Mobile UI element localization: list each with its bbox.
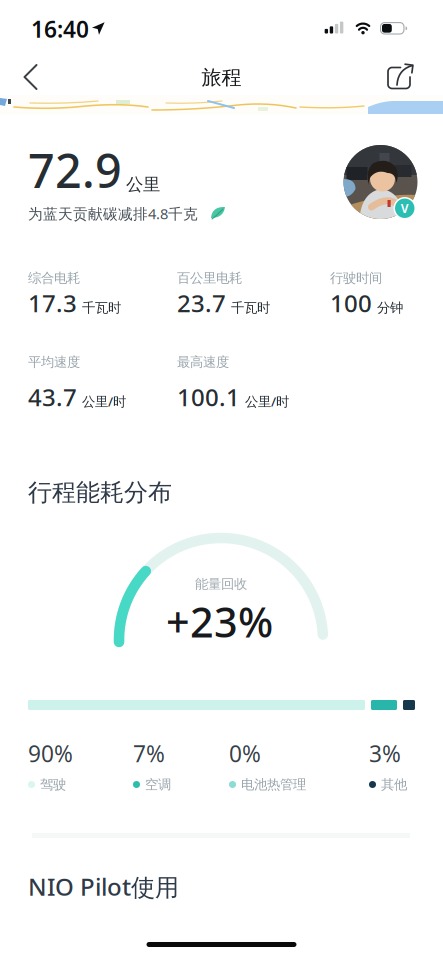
staticText: 百公里电耗 bbox=[177, 270, 242, 286]
staticText: 16:40 bbox=[31, 14, 89, 44]
staticText: 其他 bbox=[381, 776, 407, 793]
staticText: 0% bbox=[229, 738, 261, 768]
staticText: 千瓦时 bbox=[231, 300, 270, 316]
staticText: 驾驶 bbox=[40, 776, 66, 793]
staticText: 行程能耗分布 bbox=[28, 478, 172, 507]
staticText: 23.7 bbox=[177, 287, 226, 319]
staticText: 旅程 bbox=[201, 65, 241, 90]
staticText: V bbox=[401, 200, 409, 216]
staticText: 公里 bbox=[126, 174, 160, 195]
staticText: 平均速度 bbox=[28, 354, 80, 370]
staticText: 72.9 bbox=[28, 139, 122, 201]
staticText: 3% bbox=[369, 738, 401, 768]
staticText: 空调 bbox=[145, 776, 171, 793]
staticText: 能量回收 bbox=[195, 576, 247, 592]
staticText: 千瓦时 bbox=[82, 300, 121, 316]
button[interactable]: Back bbox=[8, 54, 52, 100]
staticText: 17.3 bbox=[28, 287, 77, 319]
staticText: 90% bbox=[28, 738, 73, 768]
staticText: 100.1 bbox=[177, 381, 240, 413]
staticText: +23% bbox=[166, 594, 273, 649]
staticText: 100 bbox=[330, 287, 372, 319]
staticText: 行驶时间 bbox=[330, 270, 382, 286]
staticText: 7% bbox=[133, 738, 165, 768]
staticText: 公里/时 bbox=[82, 392, 126, 410]
button[interactable]: Share bbox=[375, 53, 425, 99]
staticText: 电池热管理 bbox=[241, 776, 306, 793]
staticText: 最高速度 bbox=[177, 354, 229, 370]
staticText: 43.7 bbox=[28, 381, 77, 413]
staticText: NIO Pilot使用 bbox=[28, 870, 179, 902]
staticText: 分钟 bbox=[377, 300, 403, 316]
staticText: 综合电耗 bbox=[28, 270, 80, 286]
staticText: 为蓝天贡献碳减排4.8千克 bbox=[28, 204, 198, 223]
staticText: 公里/时 bbox=[245, 392, 289, 410]
